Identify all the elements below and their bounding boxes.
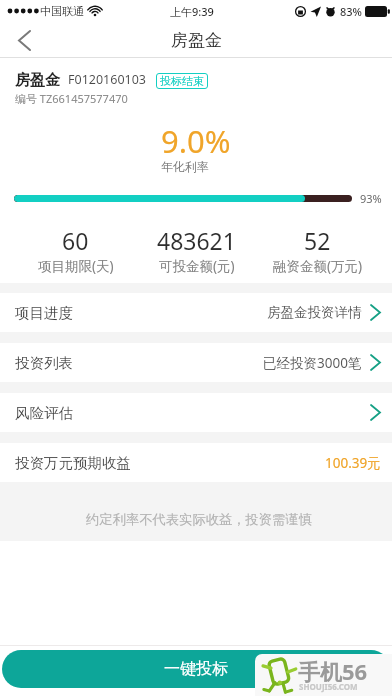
- staticText: 房盈金: [15, 71, 60, 90]
- staticText: 投资列表: [15, 354, 73, 372]
- staticText: 年化利率: [161, 159, 209, 174]
- staticText: 编号 TZ661457577470: [15, 91, 128, 106]
- staticText: 中国联通: [40, 4, 84, 18]
- staticText: 100.39元: [325, 454, 381, 472]
- staticText: 9.0%: [161, 120, 231, 162]
- staticText: 可投金额(元): [159, 257, 235, 275]
- staticText: 一键投标: [164, 659, 228, 679]
- staticText: 60: [62, 225, 89, 256]
- staticText: 项目期限(天): [38, 257, 114, 275]
- staticText: 融资金额(万元): [273, 257, 363, 275]
- staticText: 52: [304, 225, 331, 256]
- staticText: 手机56: [298, 656, 368, 686]
- staticText: 项目进度: [15, 304, 73, 322]
- staticText: 已经投资3000笔: [263, 354, 362, 372]
- staticText: 83%: [340, 4, 362, 19]
- staticText: 483621: [157, 225, 236, 256]
- button[interactable]: 项目进度: [0, 293, 392, 332]
- staticText: 房盈金投资详情: [267, 304, 362, 321]
- staticText: 投资万元预期收益: [15, 454, 131, 472]
- staticText: 93%: [360, 191, 382, 206]
- staticText: SHOUJI56.COM: [299, 681, 358, 692]
- button[interactable]: 投资列表: [0, 343, 392, 382]
- staticText: F0120160103: [68, 71, 146, 88]
- staticText: 投标结束: [160, 74, 204, 88]
- staticText: 房盈金: [171, 30, 222, 51]
- button[interactable]: 一键投标: [2, 650, 390, 688]
- button[interactable]: 风险评估: [0, 393, 392, 432]
- button[interactable]: Back: [0, 22, 48, 58]
- button[interactable]: 投资万元预期收益: [0, 443, 392, 482]
- staticText: 风险评估: [15, 404, 73, 422]
- staticText: 约定利率不代表实际收益，投资需谨慎: [86, 511, 313, 528]
- staticText: 上午9:39: [170, 4, 214, 19]
